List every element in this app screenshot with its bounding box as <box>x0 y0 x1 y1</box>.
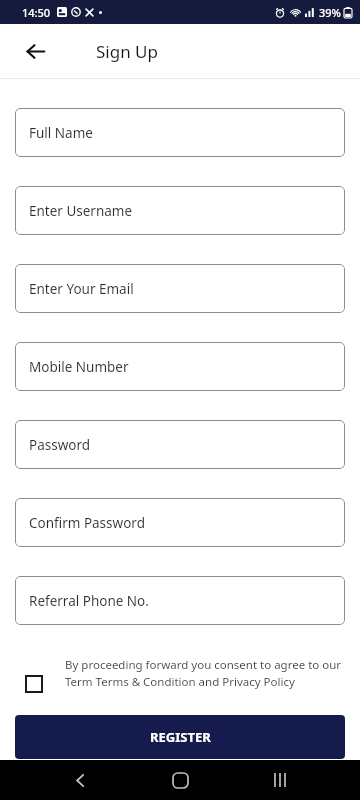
staticText: Referral Phone No. <box>29 592 149 610</box>
staticText: Enter Username <box>29 202 133 220</box>
button[interactable]: Recent apps <box>260 760 300 800</box>
button[interactable]: Enter Your Email <box>15 264 345 313</box>
staticText: 39% <box>319 5 341 20</box>
button[interactable]: Home <box>160 760 200 800</box>
button[interactable]: Referral Phone No. <box>15 576 345 625</box>
staticText: REGISTER <box>150 728 211 746</box>
staticText: Confirm Password <box>29 514 145 532</box>
staticText: Password <box>29 436 91 454</box>
staticText: Sign Up <box>96 40 158 63</box>
button[interactable]: By proceeding forward you consent to agr… <box>15 657 345 693</box>
staticText: By proceeding forward you consent to agr… <box>65 657 345 690</box>
button[interactable]: REGISTER <box>15 715 345 759</box>
staticText: Full Name <box>29 124 93 142</box>
staticText: Enter Your Email <box>29 280 134 298</box>
button[interactable]: Confirm Password <box>15 498 345 547</box>
button[interactable]: Back <box>60 760 100 800</box>
staticText: 14:50 <box>22 5 51 20</box>
button[interactable]: Mobile Number <box>15 342 345 391</box>
button[interactable]: Enter Username <box>15 186 345 235</box>
staticText: Mobile Number <box>29 358 129 376</box>
button[interactable]: Password <box>15 420 345 469</box>
button[interactable]: Back <box>14 30 56 72</box>
button[interactable]: Full Name <box>15 108 345 157</box>
